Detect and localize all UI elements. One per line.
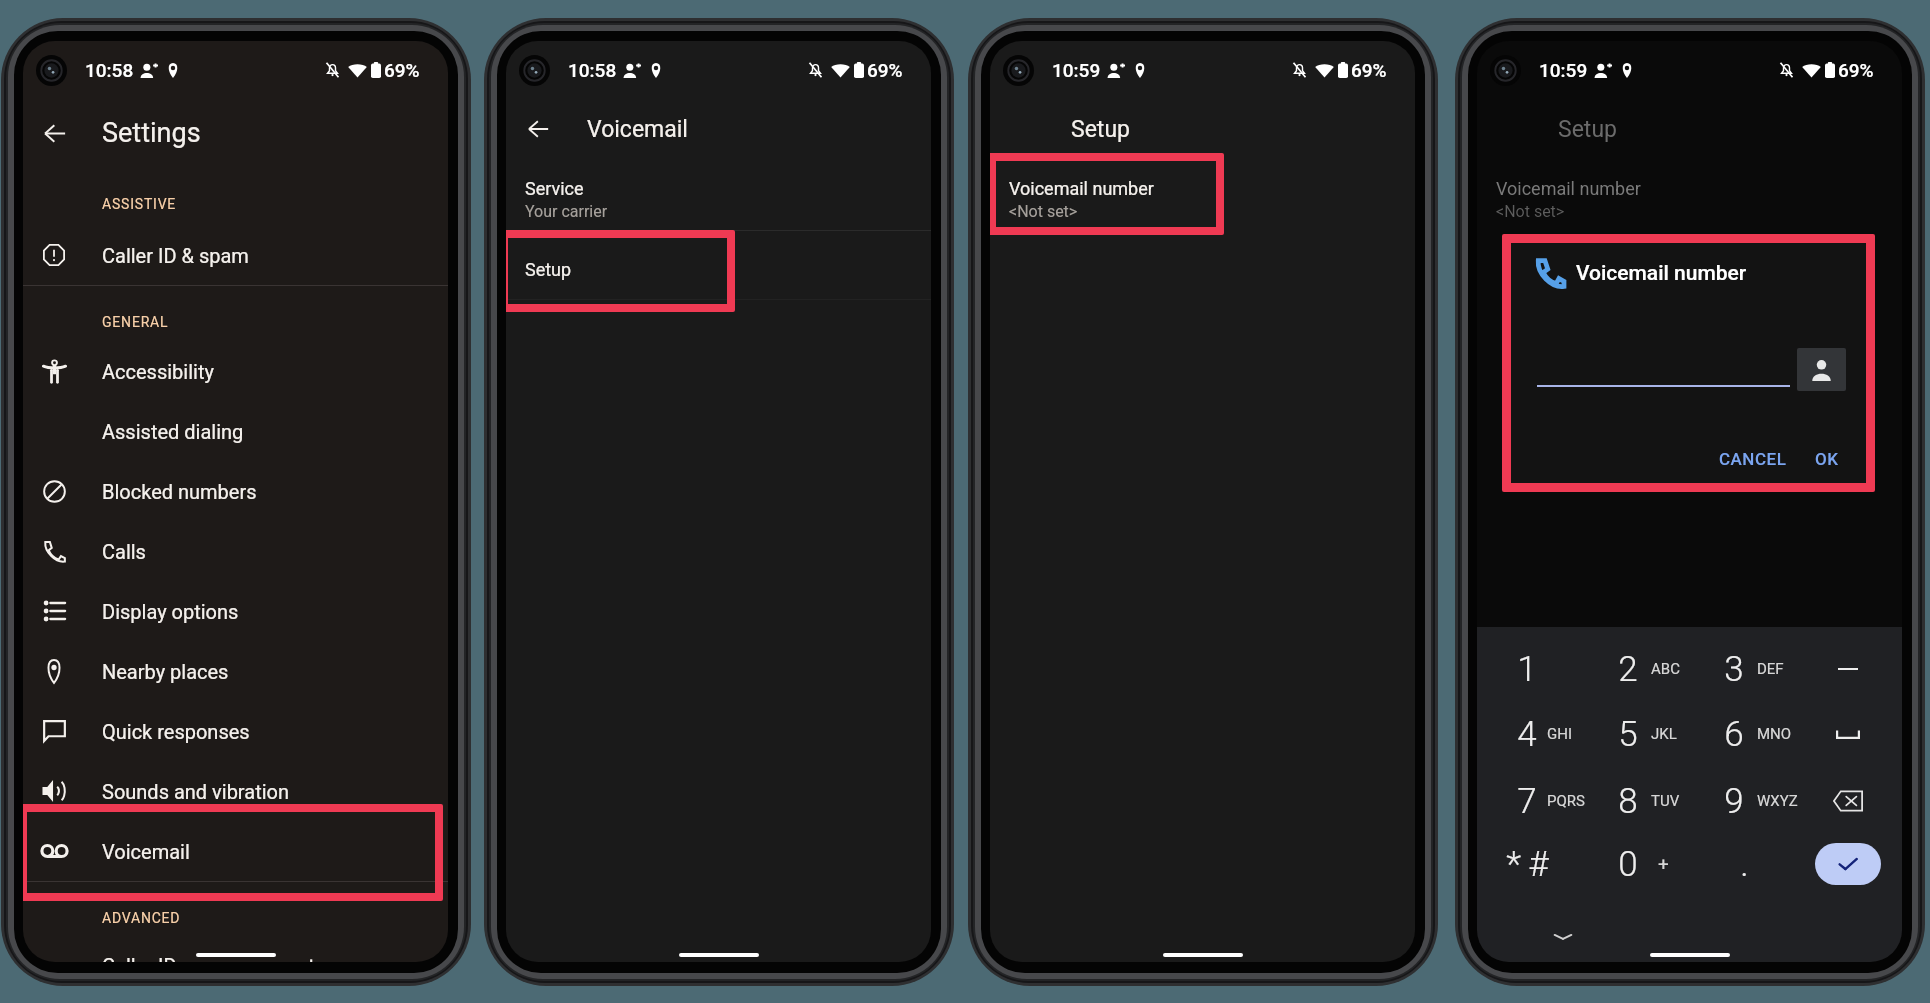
staticText: 1 xyxy=(1517,649,1537,690)
staticText: Setup xyxy=(525,259,572,280)
staticText: 7 xyxy=(1517,781,1537,822)
staticText: Assisted dialing xyxy=(102,420,244,443)
button[interactable]: * # xyxy=(1479,832,1575,896)
staticText: ASSISTIVE xyxy=(102,196,177,212)
staticText: Blocked numbers xyxy=(102,480,257,503)
button[interactable]: Back xyxy=(31,109,79,157)
staticText: ABC xyxy=(1651,660,1680,678)
button[interactable]: 4 xyxy=(1479,702,1575,766)
button[interactable]: 0 xyxy=(1580,832,1676,896)
staticText: <Not set> xyxy=(1496,202,1565,221)
staticText: JKL xyxy=(1651,725,1677,743)
staticText: 5 xyxy=(1618,714,1638,755)
staticText: 2 xyxy=(1618,649,1638,690)
button[interactable]: . xyxy=(1686,832,1782,896)
staticText: Voicemail xyxy=(587,116,688,143)
button[interactable]: Display options xyxy=(23,581,448,641)
button[interactable]: 1 xyxy=(1479,637,1575,701)
button[interactable]: Assisted dialing xyxy=(23,401,448,461)
staticText: 0 xyxy=(1618,844,1638,885)
button[interactable]: Voicemail xyxy=(23,821,448,881)
staticText: 10:58 xyxy=(568,59,617,81)
staticText: Caller ID announcement xyxy=(102,954,315,962)
staticText: 69% xyxy=(384,59,420,81)
button[interactable]: Accessibility xyxy=(23,341,448,401)
button[interactable]: Voicemail number xyxy=(990,171,1415,233)
staticText: 10:59 xyxy=(1539,59,1588,81)
staticText: 10:59 xyxy=(1052,59,1101,81)
staticText: 3 xyxy=(1724,649,1744,690)
staticText: 69% xyxy=(867,59,903,81)
button[interactable]: Done xyxy=(1815,843,1881,885)
button[interactable]: 8 xyxy=(1580,769,1676,833)
staticText: Service xyxy=(525,178,584,199)
staticText: Calls xyxy=(102,540,146,563)
button[interactable]: 9 xyxy=(1686,769,1782,833)
staticText: Sounds and vibration xyxy=(102,780,289,803)
button[interactable]: Backspace xyxy=(1808,769,1888,833)
staticText: TUV xyxy=(1651,792,1680,810)
staticText: Quick responses xyxy=(102,720,250,743)
staticText: 9 xyxy=(1724,781,1744,822)
staticText: * # xyxy=(1506,844,1549,885)
staticText: 69% xyxy=(1838,59,1874,81)
staticText: Voicemail number xyxy=(1009,178,1154,199)
button[interactable]: Calls xyxy=(23,521,448,581)
staticText: 4 xyxy=(1517,714,1537,755)
button[interactable]: Dash xyxy=(1808,637,1888,701)
button[interactable]: 6 xyxy=(1686,702,1782,766)
staticText: 10:58 xyxy=(85,59,134,81)
staticText: <Not set> xyxy=(1009,202,1078,221)
staticText: GHI xyxy=(1547,725,1572,743)
staticText: MNO xyxy=(1757,725,1792,743)
button[interactable]: Setup xyxy=(506,239,931,299)
staticText: PQRS xyxy=(1547,792,1585,810)
button[interactable]: Hide keyboard xyxy=(1552,930,1574,943)
button[interactable]: Space xyxy=(1808,702,1888,766)
staticText: Setup xyxy=(1558,116,1617,143)
button[interactable]: 3 xyxy=(1686,637,1782,701)
button[interactable]: CANCEL xyxy=(1709,441,1797,477)
button[interactable]: Service xyxy=(506,171,931,228)
staticText: 69% xyxy=(1351,59,1387,81)
button[interactable]: Quick responses xyxy=(23,701,448,761)
staticText: Caller ID & spam xyxy=(102,244,249,267)
staticText: GENERAL xyxy=(102,314,169,330)
staticText: Settings xyxy=(102,117,201,149)
staticText: 8 xyxy=(1618,781,1638,822)
staticText: WXYZ xyxy=(1757,792,1798,810)
staticText: ADVANCED xyxy=(102,910,181,926)
staticText: 6 xyxy=(1724,714,1744,755)
button[interactable]: Caller ID announcement xyxy=(23,935,448,962)
button[interactable]: Blocked numbers xyxy=(23,461,448,521)
staticText: Your carrier xyxy=(525,202,608,221)
button[interactable]: Sounds and vibration xyxy=(23,761,448,821)
button[interactable]: 7 xyxy=(1479,769,1575,833)
button[interactable]: Nearby places xyxy=(23,641,448,701)
staticText: Voicemail xyxy=(102,840,190,863)
staticText: CANCEL xyxy=(1719,449,1787,469)
button[interactable]: Choose contact xyxy=(1797,348,1846,391)
staticText: DEF xyxy=(1757,660,1784,678)
button[interactable]: Back xyxy=(515,105,562,152)
button[interactable]: Caller ID & spam xyxy=(23,225,448,285)
staticText: Voicemail number xyxy=(1576,261,1747,286)
staticText: Accessibility xyxy=(102,360,214,383)
staticText: + xyxy=(1658,853,1669,875)
button[interactable]: 5 xyxy=(1580,702,1676,766)
staticText: Nearby places xyxy=(102,660,229,683)
staticText: . xyxy=(1740,844,1749,885)
staticText: Display options xyxy=(102,600,239,623)
staticText: Voicemail number xyxy=(1496,178,1641,199)
button[interactable]: OK xyxy=(1805,441,1849,477)
button[interactable]: 2 xyxy=(1580,637,1676,701)
staticText: OK xyxy=(1815,449,1839,469)
staticText: Setup xyxy=(1071,116,1130,143)
